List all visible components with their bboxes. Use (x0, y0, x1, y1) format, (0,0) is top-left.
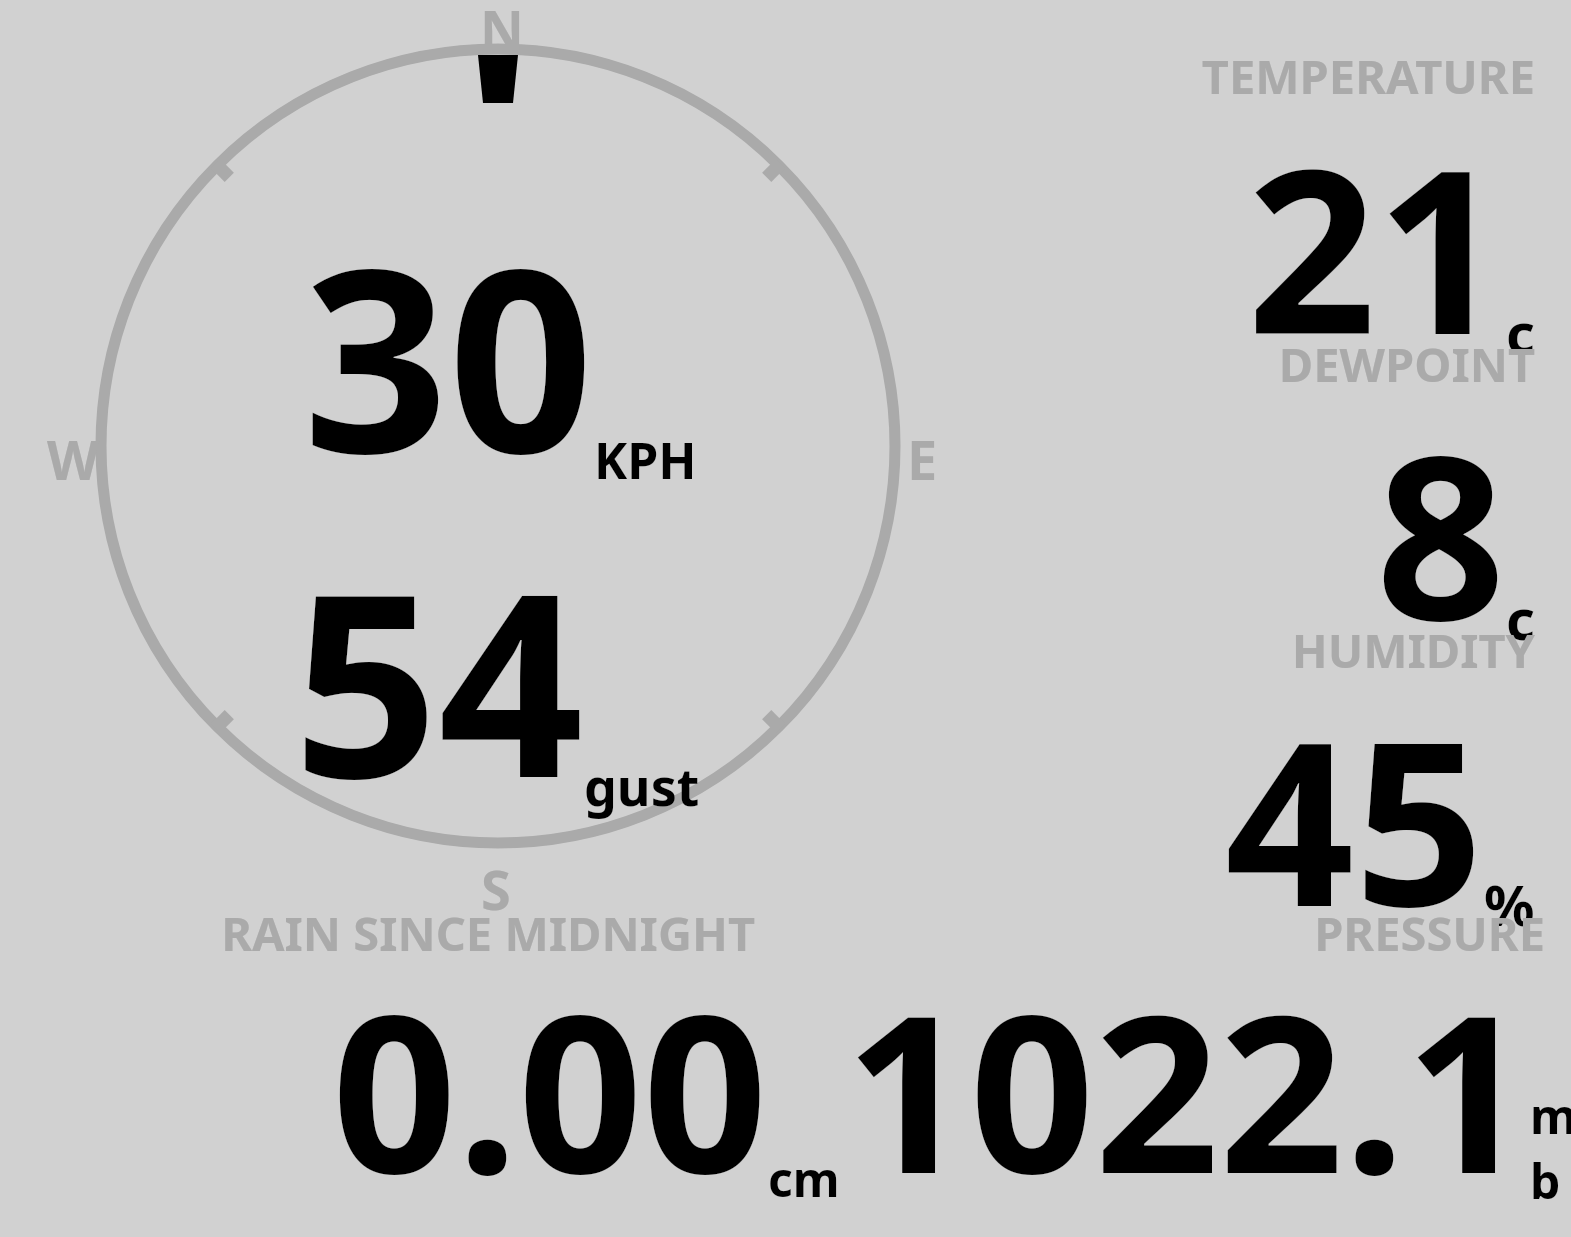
staticText: 8 (1376, 378, 1506, 686)
staticText: 54 (293, 505, 584, 851)
staticText: E (907, 422, 938, 496)
staticText: S (481, 852, 511, 926)
staticText: cm (768, 1146, 840, 1211)
button[interactable]: 45 (835, 664, 1535, 972)
button[interactable]: 1022.1 (845, 940, 1545, 1237)
staticText: TEMPERATURE (835, 44, 1535, 108)
other: Wind compass dial (0, 0, 1571, 1237)
button[interactable]: 8 (835, 378, 1535, 686)
staticText: c (1506, 294, 1535, 370)
staticText: 21 (1247, 92, 1506, 400)
staticText: % (1484, 866, 1535, 942)
staticText: HUMIDITY (835, 618, 1535, 682)
staticText: c (1506, 580, 1535, 656)
staticText: DEWPOINT (835, 332, 1535, 396)
staticText: W (47, 422, 100, 496)
button[interactable]: 21 (835, 92, 1535, 400)
staticText: 1022.1 (845, 940, 1530, 1237)
staticText: 45 (1225, 664, 1484, 972)
staticText: gust (584, 750, 700, 821)
staticText: KPH (594, 426, 697, 494)
staticText: mb (1530, 1083, 1545, 1213)
button[interactable]: 54 (293, 505, 700, 851)
staticText: 0.00 (332, 940, 768, 1237)
staticText: N (480, 0, 524, 66)
staticText: 30 (303, 180, 594, 526)
staticText: RAIN SINCE MIDNIGHT (55, 901, 755, 965)
staticText: PRESSURE (845, 901, 1545, 965)
button[interactable]: 30 (303, 180, 697, 526)
button[interactable]: 0.00 (140, 940, 840, 1237)
